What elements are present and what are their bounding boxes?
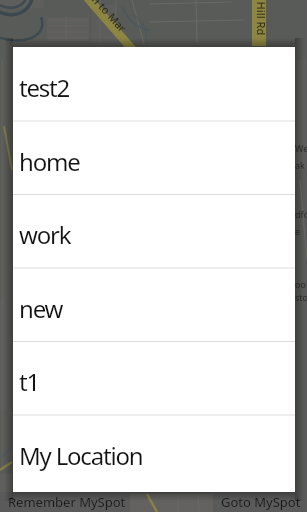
staticText: sto	[295, 291, 307, 303]
staticText: e	[295, 225, 301, 237]
button[interactable]: home	[13, 121, 295, 195]
staticText: Remember MySpot	[8, 493, 126, 511]
button[interactable]: t1	[13, 341, 295, 415]
staticText: Goto MySpot	[221, 493, 301, 511]
staticText: test2	[19, 71, 70, 104]
staticText: work	[19, 218, 71, 251]
staticText: ak	[295, 159, 305, 171]
staticText: oo	[295, 278, 306, 290]
staticText: My Location	[19, 439, 143, 472]
staticText: Wes	[295, 142, 307, 154]
staticText: m to Mar	[86, 0, 130, 36]
button[interactable]: Goto MySpot	[213, 492, 307, 512]
button[interactable]: work	[13, 194, 295, 268]
button[interactable]: new	[13, 268, 295, 342]
staticText: ol Hill Rd	[254, 0, 269, 36]
staticText: dfo	[295, 208, 307, 220]
button[interactable]: My Location	[13, 415, 295, 489]
button[interactable]: Remember MySpot	[0, 492, 130, 512]
staticText: new	[19, 292, 63, 325]
staticText: t1	[19, 365, 39, 398]
staticText: home	[19, 145, 80, 178]
button[interactable]: test2	[13, 47, 295, 121]
